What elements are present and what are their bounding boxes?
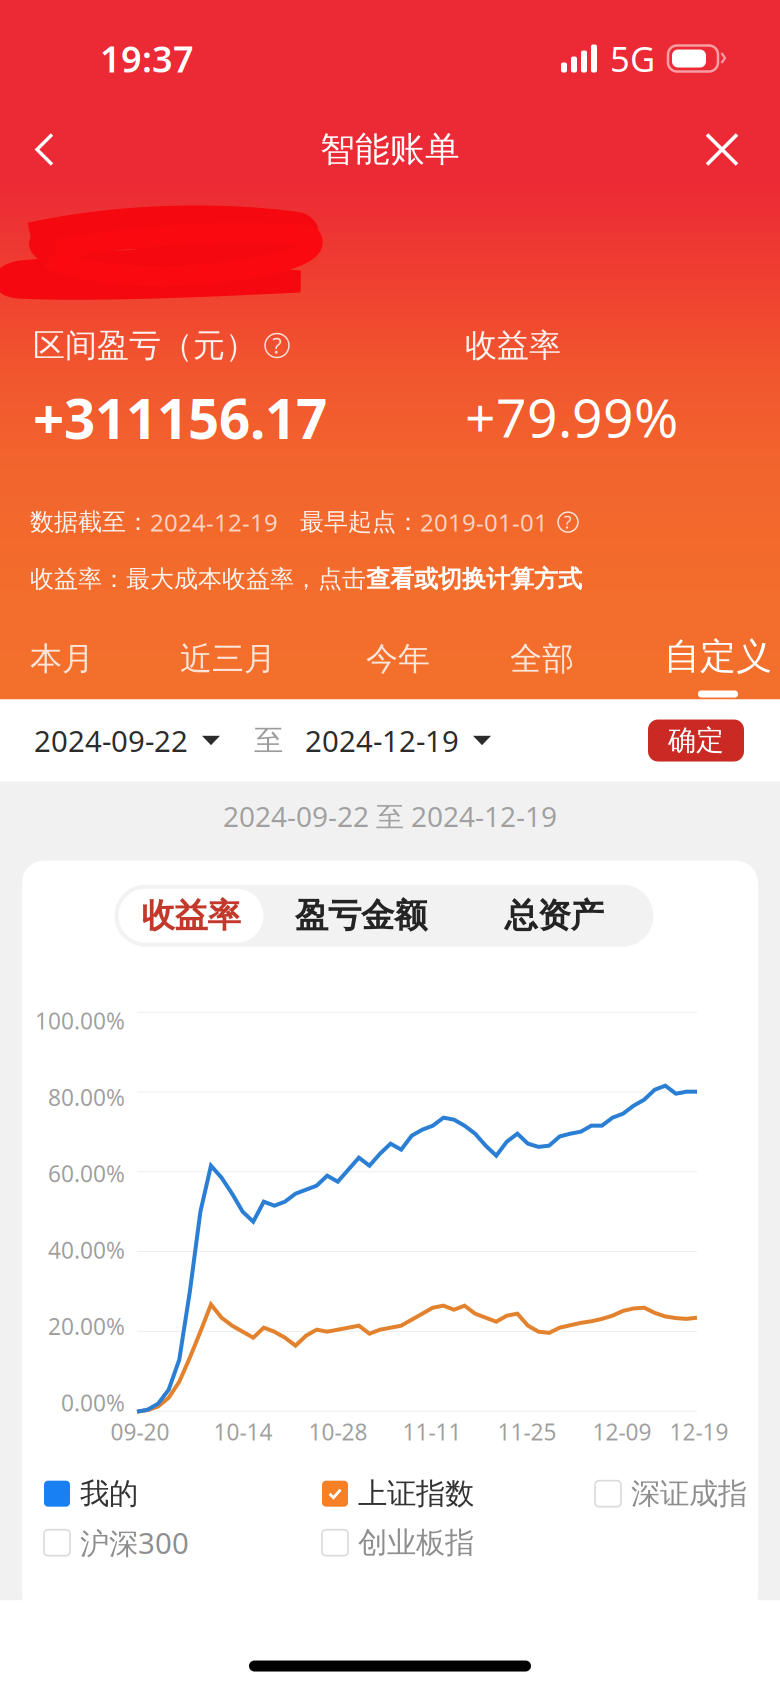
staticText: 确定 [668,723,724,758]
staticText: 10-14 [213,1417,272,1447]
staticText: 19:37 [100,35,194,82]
staticText: 20.00% [48,1311,125,1341]
staticText: 10-28 [308,1417,367,1447]
button[interactable]: 收益率 [118,889,263,943]
staticText: 0.00% [61,1388,125,1418]
staticText: 收益率 [141,895,240,936]
staticText: 今年 [366,639,430,678]
staticText: 创业板指 [358,1525,474,1561]
staticText: 深证成指 [631,1476,747,1512]
staticText: 2024-09-22 至 2024-12-19 [223,797,557,835]
button[interactable]: 自定义 [664,617,772,699]
button[interactable]: 我的 [44,1476,138,1512]
staticText: 上证指数 [358,1476,474,1512]
button[interactable]: 创业板指 [322,1525,474,1561]
staticText: 沪深300 [80,1523,189,1562]
button[interactable]: Close [685,113,759,185]
staticText: 2024-09-22 [34,721,188,760]
staticText: 至 [254,722,283,758]
staticText: 12-09 [592,1417,651,1447]
staticText: 11-11 [402,1417,461,1447]
staticText: 查看或切换计算方式 [366,564,582,594]
staticText: 数据截至： [30,507,150,537]
staticText: 80.00% [48,1082,125,1112]
staticText: 盈亏金额 [295,895,427,936]
staticText: 本月 [30,639,94,678]
staticText: 全部 [510,639,574,678]
staticText: 最大成本收益率，点击 [126,564,366,594]
staticText: 2019-01-01 [420,506,548,538]
button[interactable]: 深证成指 [595,1476,747,1512]
button[interactable]: 全部 [510,617,574,699]
button[interactable]: 沪深300 [44,1523,189,1562]
staticText: ? [564,511,572,534]
staticText: 40.00% [48,1235,125,1265]
staticText: +311156.17 [33,381,327,454]
staticText: 区间盈亏（元） [33,326,257,365]
staticText: 11-25 [497,1417,556,1447]
button[interactable]: 上证指数 [322,1476,474,1512]
staticText: 2024-12-19 [150,506,278,538]
button[interactable]: 查看或切换计算方式 [366,564,582,594]
staticText: +79.99% [465,381,678,452]
staticText: 近三月 [180,639,276,678]
button[interactable]: 2024-09-22 [34,721,220,760]
staticText: 100.00% [35,1006,125,1036]
staticText: 智能账单 [320,128,460,171]
button[interactable]: 2024-12-19 [305,721,491,760]
button[interactable]: 本月 [30,617,94,699]
button[interactable]: 近三月 [180,617,276,699]
staticText: 60.00% [48,1158,125,1188]
staticText: 12-19 [669,1417,728,1447]
staticText: 自定义 [664,634,772,678]
staticText: ? [272,331,281,360]
staticText: 总资产 [504,895,603,936]
staticText: 我的 [80,1476,138,1512]
staticText: 收益率 [465,326,561,365]
button[interactable]: 今年 [366,617,430,699]
button[interactable]: 总资产 [458,889,649,943]
staticText: 收益率： [30,564,126,594]
staticText: 09-20 [110,1417,169,1447]
button[interactable]: 盈亏金额 [263,889,458,943]
button[interactable]: 确定 [648,719,744,761]
staticText: 最早起点： [300,507,420,537]
staticText: 2024-12-19 [305,721,459,760]
button[interactable]: Back [8,113,82,185]
staticText: 5G [610,35,655,81]
